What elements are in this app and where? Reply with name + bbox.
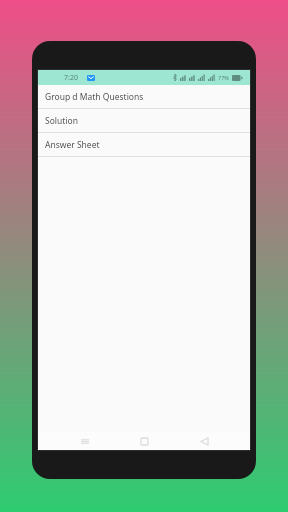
staticText: 77% [218,74,229,81]
button[interactable]: Back [191,432,217,450]
button[interactable]: Group d Math Questions [38,85,250,108]
staticText: Group d Math Questions [45,91,144,103]
staticText: 7:20 [64,73,78,83]
button[interactable]: Solution [38,109,250,132]
staticText: Solution [45,115,78,127]
button[interactable]: Home [131,432,157,450]
staticText: Answer Sheet [45,139,100,151]
button[interactable]: Answer Sheet [38,133,250,156]
button[interactable]: Recent apps [72,432,98,450]
